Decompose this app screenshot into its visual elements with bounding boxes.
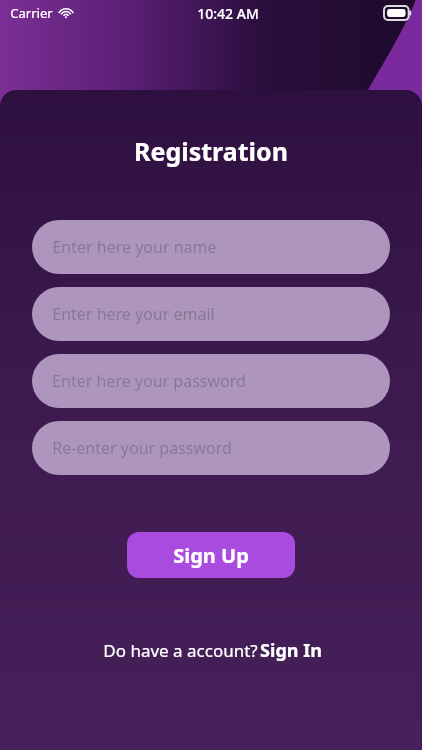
staticText: Do have a account? xyxy=(101,639,260,662)
button[interactable]: Sign Up xyxy=(127,532,295,578)
staticText: Enter here your name xyxy=(52,236,217,258)
staticText: Re-enter your password xyxy=(52,437,232,459)
staticText: Enter here your email xyxy=(52,303,215,325)
button[interactable]: Do have a account? xyxy=(93,632,330,669)
button[interactable]: Enter here your password xyxy=(32,354,390,408)
button[interactable]: Re-enter your password xyxy=(32,421,390,475)
staticText: Carrier xyxy=(10,4,53,22)
staticText: Enter here your password xyxy=(52,370,246,392)
staticText: Sign In xyxy=(260,638,322,663)
staticText: Sign Up xyxy=(173,542,249,569)
staticText: Registration xyxy=(134,134,288,168)
staticText: 10:42 AM xyxy=(197,4,259,23)
button[interactable]: Enter here your name xyxy=(32,220,390,274)
button[interactable]: Enter here your email xyxy=(32,287,390,341)
